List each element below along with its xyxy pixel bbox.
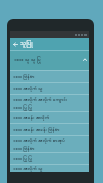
button[interactable]: ၁။၁။ အလိုက် သူ [10,82,89,94]
staticText: ၁။၁။ ပြု ပြု [13,104,33,111]
button[interactable]: ၁။၁။ အခန်း အခန်း မြန်မာ [10,123,89,135]
staticText: ၁။၁။ အလိုက် အလိုက် စာအုပ် [13,137,65,144]
staticText: ၁။၁။ အလိုက် သူ [13,85,43,92]
staticText: ၁။၁။ ပြု ပြု [13,155,33,162]
staticText: ၁။၁။ အလိုက် အလိုက် ကျောင်း [13,96,68,103]
button[interactable]: ၁။၁။ သူ သူ ပြု [10,50,89,70]
button[interactable]: ၁။၁။ အလိုက် အလိုက် စာအုပ် [10,135,89,152]
staticText: ၁။၁။ အခန်း အလိုက် [13,114,50,121]
staticText: ၁။၁။ မြန်မာ [13,73,35,80]
staticText: ၁။၁။ မြန်မာ [13,145,35,152]
button[interactable]: ၁။၁။ မြန်မာ [10,70,89,82]
button[interactable]: ၁။၁။ အလိုက် အလိုက် ကျောင်း [10,94,89,111]
button[interactable]: ၁။၁။ အလိုက် သူ [10,164,89,172]
button[interactable]: Back [10,38,20,50]
button[interactable]: ၁။၁။ ပြု ပြု [10,152,89,164]
staticText: ၁။၁။ အခန်း အခန်း မြန်မာ [13,126,60,133]
staticText: ၁။၁။ သူ သူ ပြု [14,56,41,64]
staticText: သူပြု [20,38,33,50]
staticText: ၁။၁။ အလိုက် သူ [13,165,43,172]
button[interactable]: ၁။၁။ အခန်း အလိုက် [10,111,89,123]
